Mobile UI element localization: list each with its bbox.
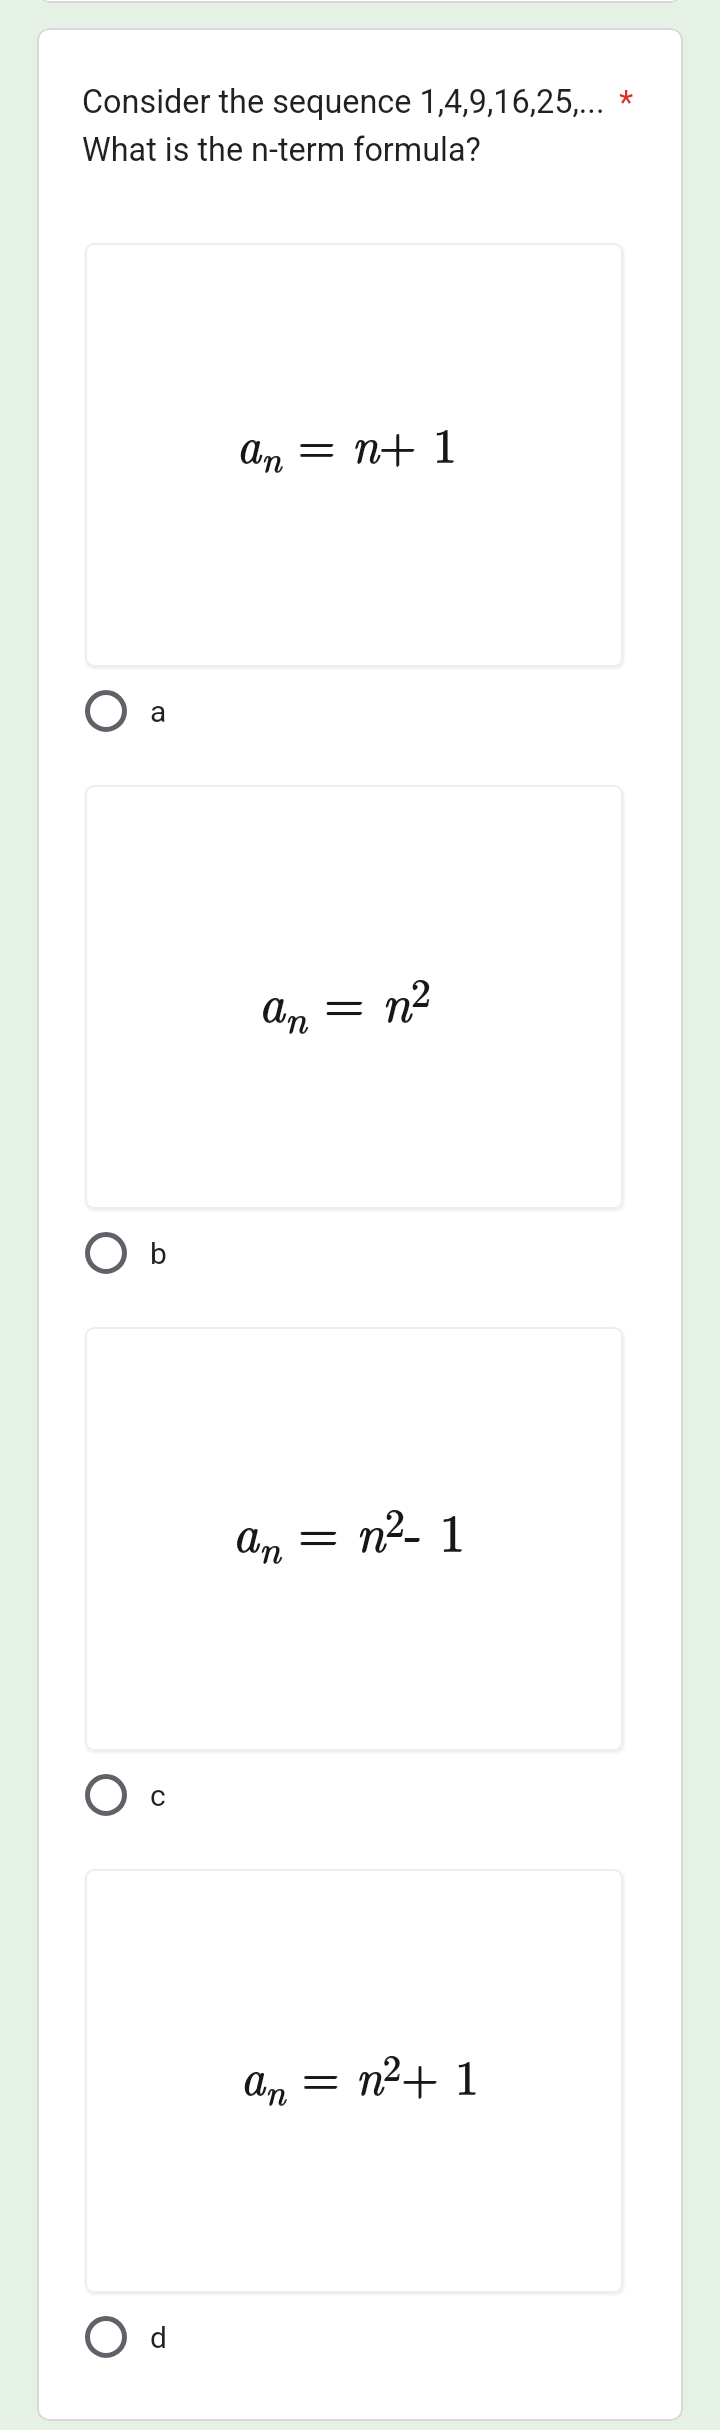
other: Select option d xyxy=(85,2316,127,2358)
staticText: a xyxy=(150,694,167,729)
staticText: b xyxy=(150,1236,167,1271)
staticText: d xyxy=(150,2320,167,2355)
staticText: an = n2+ 1 xyxy=(240,2040,479,2117)
other: Select option b xyxy=(85,1232,127,1274)
staticText: an = n+ 1 xyxy=(236,407,457,483)
staticText: * xyxy=(619,83,634,122)
staticText: an = n2 xyxy=(259,962,432,1044)
other: Select option a xyxy=(85,690,127,732)
staticText: an = n2- 1 xyxy=(232,1492,465,1574)
staticText: an = n2+ 1 xyxy=(241,2039,480,2116)
staticText: an = n2- 1 xyxy=(232,1493,465,1575)
button[interactable]: Select option b xyxy=(85,1209,660,1297)
staticText: Consider the sequence 1,4,9,16,25,... Wh… xyxy=(82,83,605,169)
button[interactable]: Select option a xyxy=(85,667,660,755)
staticText: c xyxy=(150,1778,166,1813)
staticText: an = n+ 1 xyxy=(236,408,457,484)
other: Select option c xyxy=(85,1774,127,1816)
button[interactable]: Select option c xyxy=(85,1751,660,1839)
staticText: an = n+ 1 xyxy=(237,407,458,483)
staticText: an = n2- 1 xyxy=(233,1492,466,1574)
button[interactable]: Select option d xyxy=(85,2293,660,2381)
staticText: an = n2+ 1 xyxy=(240,2039,479,2116)
staticText: an = n2 xyxy=(258,963,431,1045)
staticText: an = n2 xyxy=(258,962,431,1044)
